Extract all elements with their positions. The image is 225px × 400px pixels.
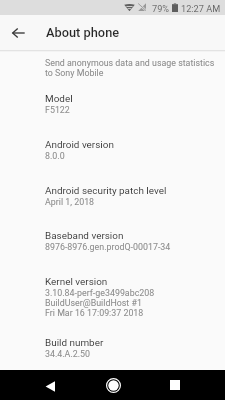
button[interactable]: Baseband version bbox=[0, 219, 225, 264]
staticText: About phone bbox=[46, 25, 120, 40]
button[interactable]: Navigate up bbox=[0, 15, 36, 50]
staticText: Android security patch level bbox=[45, 185, 167, 197]
button[interactable]: Build number bbox=[0, 328, 225, 370]
staticText: 8976-8976.gen.prodQ-00017-34 bbox=[45, 242, 171, 252]
staticText: 3.10.84-perf-ge3499abc208 bbox=[45, 288, 155, 298]
staticText: April 1, 2018 bbox=[45, 197, 95, 207]
staticText: Android version bbox=[45, 139, 114, 151]
staticText: to Sony Mobile bbox=[45, 68, 104, 78]
button[interactable]: Android version bbox=[0, 127, 225, 173]
staticText: Build number bbox=[45, 337, 104, 349]
button[interactable]: Android security patch level bbox=[0, 173, 225, 219]
staticText: 8.0.0 bbox=[45, 151, 65, 161]
button[interactable]: Home bbox=[93, 370, 133, 400]
staticText: 79% bbox=[152, 3, 170, 14]
staticText: Baseband version bbox=[45, 230, 124, 242]
staticText: Fri Mar 16 17:09:37 2018 bbox=[45, 308, 144, 318]
button[interactable]: Model bbox=[0, 92, 225, 127]
button[interactable]: Recent apps bbox=[155, 370, 195, 400]
staticText: Model bbox=[45, 93, 73, 105]
staticText: 12:27 AM bbox=[181, 3, 221, 14]
button[interactable]: Back bbox=[30, 370, 70, 400]
button[interactable]: Kernel version bbox=[0, 264, 225, 328]
staticText: BuildUser@BuildHost #1 bbox=[45, 298, 142, 308]
staticText: Send anonymous data and usage statistics bbox=[45, 58, 215, 68]
staticText: 34.4.A.2.50 bbox=[45, 349, 90, 358]
staticText: F5122 bbox=[45, 105, 70, 115]
staticText: Kernel version bbox=[45, 276, 108, 288]
